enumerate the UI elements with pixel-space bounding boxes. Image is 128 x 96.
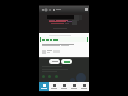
button[interactable]: Confirm <box>61 59 72 64</box>
button[interactable]: Forward <box>48 8 52 12</box>
button[interactable]: Groups <box>59 82 69 91</box>
button[interactable]: Library <box>69 82 79 91</box>
button[interactable]: Cancel <box>49 59 60 64</box>
button[interactable]: Home <box>39 82 49 91</box>
button[interactable]: Back <box>41 8 45 12</box>
button[interactable]: Explore <box>49 82 59 91</box>
button[interactable]: More <box>79 82 89 91</box>
button[interactable]: Reload <box>44 8 48 12</box>
